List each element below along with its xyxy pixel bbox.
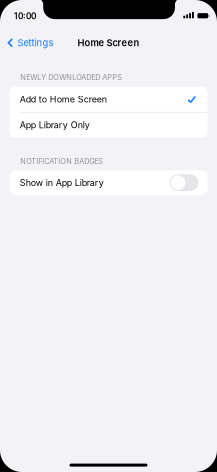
staticText: Home Screen	[77, 37, 139, 48]
staticText: Settings	[17, 37, 53, 48]
staticText: App Library Only	[20, 120, 90, 130]
staticText: Add to Home Screen	[20, 94, 107, 105]
button[interactable]: App Library Only	[9, 112, 208, 138]
staticText: NOTIFICATION BADGES	[20, 157, 103, 166]
staticText: 10:00	[14, 11, 36, 21]
button[interactable]: Show in App Library	[170, 174, 198, 191]
button[interactable]: Add to Home Screen	[9, 87, 208, 112]
staticText: Show in App Library	[20, 177, 104, 188]
button[interactable]: Settings	[0, 33, 60, 52]
staticText: NEWLY DOWNLOADED APPS	[20, 73, 122, 82]
